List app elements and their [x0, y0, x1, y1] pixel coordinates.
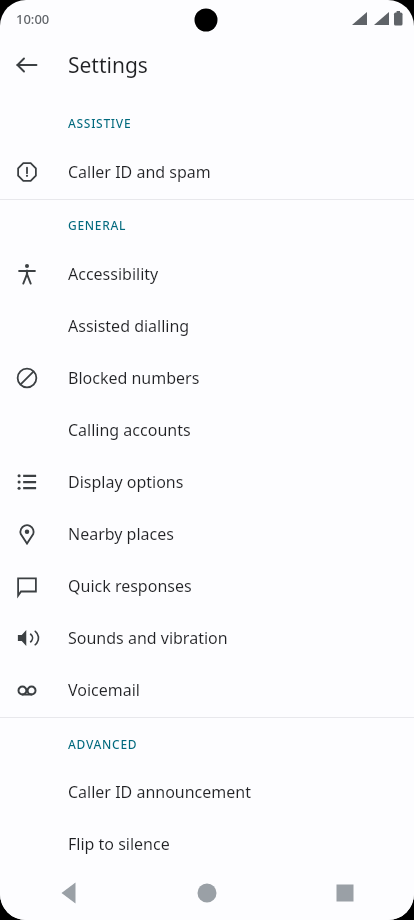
button[interactable]: Assisted dialling [0, 300, 414, 352]
button[interactable]: Display options [0, 456, 414, 508]
staticText: Display options [68, 471, 184, 493]
button[interactable]: Nearby places [0, 508, 414, 560]
staticText: Voicemail [68, 679, 140, 701]
button[interactable]: Caller ID announcement [0, 766, 414, 818]
button[interactable]: Accessibility [0, 248, 414, 300]
staticText: Caller ID and spam [68, 161, 211, 183]
button[interactable]: Recent apps [276, 866, 414, 920]
button[interactable]: Back [0, 866, 138, 920]
button[interactable]: Back [3, 41, 51, 89]
staticText: Assisted dialling [68, 315, 190, 337]
button[interactable]: Blocked numbers [0, 352, 414, 404]
staticText: Flip to silence [68, 833, 170, 855]
staticText: Calling accounts [68, 419, 191, 441]
button[interactable]: Flip to silence [0, 818, 414, 870]
staticText: Quick responses [68, 575, 192, 597]
button[interactable]: Caller ID and spam [0, 146, 414, 198]
button[interactable]: Home [138, 866, 276, 920]
staticText: Blocked numbers [68, 367, 200, 389]
button[interactable]: Quick responses [0, 560, 414, 612]
staticText: GENERAL [68, 217, 127, 233]
button[interactable]: Calling accounts [0, 404, 414, 456]
staticText: ASSISTIVE [68, 115, 132, 131]
button[interactable]: Voicemail [0, 664, 414, 716]
staticText: ADVANCED [68, 736, 138, 752]
staticText: Settings [68, 51, 148, 80]
button[interactable]: Sounds and vibration [0, 612, 414, 664]
staticText: Nearby places [68, 523, 174, 545]
staticText: Sounds and vibration [68, 627, 228, 649]
staticText: 10:00 [16, 10, 50, 28]
staticText: Caller ID announcement [68, 781, 251, 803]
staticText: Accessibility [68, 263, 159, 285]
